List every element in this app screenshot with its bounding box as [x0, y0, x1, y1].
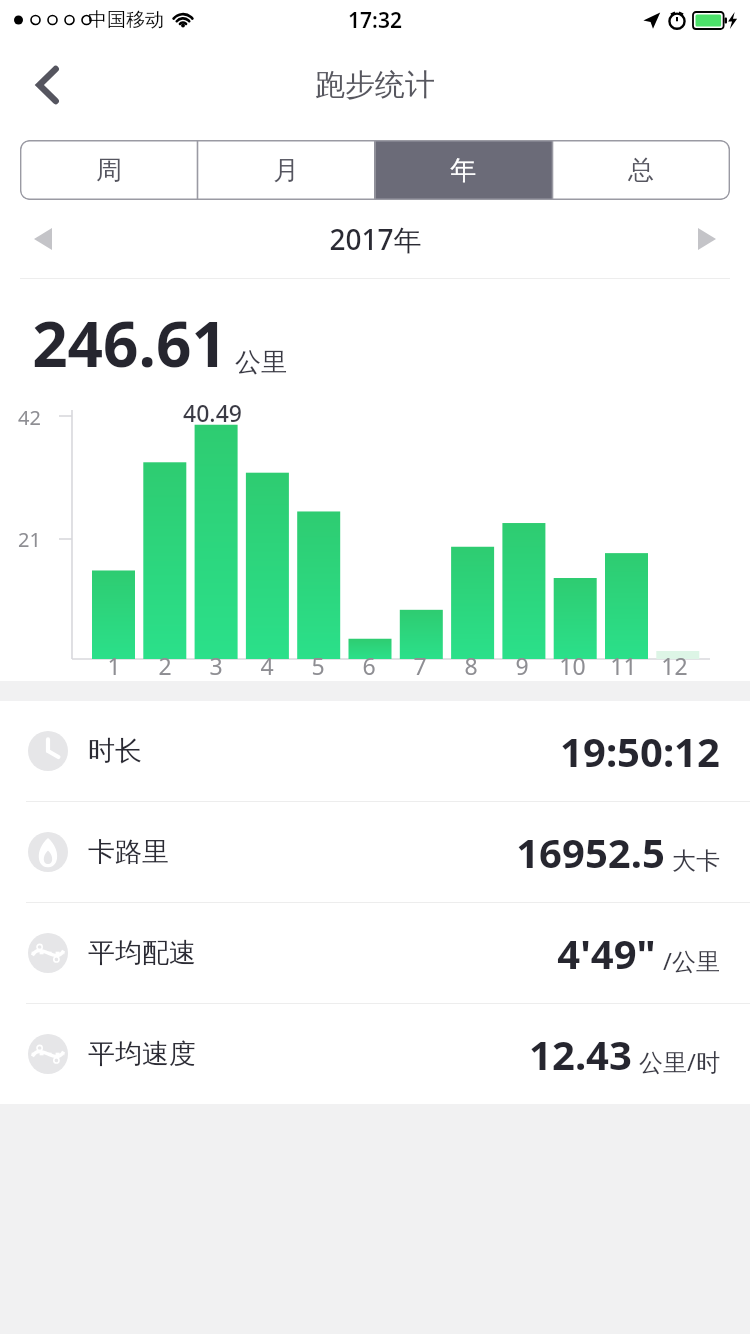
staticText: /公里	[663, 944, 720, 977]
button[interactable]: 月	[197, 140, 374, 200]
button[interactable]: 卡路里	[0, 802, 750, 902]
staticText: 5	[311, 650, 325, 681]
staticText: 9	[515, 650, 529, 681]
staticText: 1	[107, 650, 121, 681]
button[interactable]: 返回	[18, 55, 78, 115]
staticText: 40.49	[183, 397, 242, 428]
staticText: 中国移动	[88, 8, 164, 32]
button[interactable]: 年	[374, 140, 552, 200]
staticText: 8	[464, 650, 478, 681]
staticText: 卡路里	[88, 835, 169, 869]
staticText: 跑步统计	[315, 66, 435, 104]
staticText: 19:50:12	[560, 724, 720, 778]
staticText: 时长	[88, 734, 142, 768]
button[interactable]: 下一年	[680, 212, 734, 266]
staticText: 21	[18, 526, 41, 553]
staticText: 12	[661, 650, 688, 681]
staticText: 公里	[235, 346, 287, 379]
staticText: 12.43	[529, 1027, 632, 1081]
staticText: 总	[628, 154, 654, 187]
staticText: 11	[610, 650, 637, 681]
staticText: 2017年	[329, 220, 422, 258]
staticText: 大卡	[672, 846, 720, 876]
staticText: 平均配速	[88, 936, 196, 970]
button[interactable]: 平均速度	[0, 1004, 750, 1104]
staticText: 平均速度	[88, 1037, 196, 1071]
staticText: 6	[362, 650, 376, 681]
button[interactable]: 周	[20, 140, 197, 200]
button[interactable]: 总	[552, 140, 730, 200]
staticText: 年	[450, 154, 476, 187]
button[interactable]: 平均配速	[0, 903, 750, 1003]
button[interactable]: 上一年	[16, 212, 70, 266]
button[interactable]: 时长	[0, 701, 750, 801]
staticText: 10	[559, 650, 586, 681]
staticText: 7	[413, 650, 427, 681]
staticText: 4	[260, 650, 274, 681]
staticText: 3	[209, 650, 223, 681]
staticText: 16952.5	[516, 825, 665, 879]
staticText: 月	[273, 154, 299, 187]
staticText: 4'49"	[557, 926, 656, 980]
staticText: 公里/时	[639, 1045, 720, 1078]
staticText: 17:32	[348, 6, 402, 35]
staticText: 246.61	[32, 301, 227, 385]
staticText: 42	[18, 404, 41, 431]
staticText: 周	[96, 154, 122, 187]
staticText: 2	[158, 650, 172, 681]
